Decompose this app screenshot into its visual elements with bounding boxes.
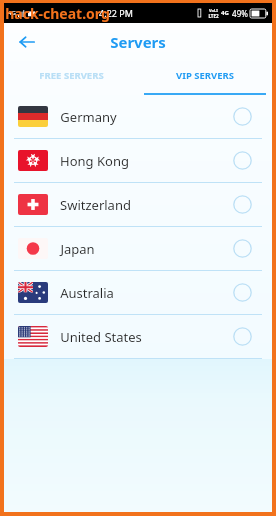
staticText: United States [60,328,142,346]
button[interactable]: Australia [4,271,272,314]
button[interactable]: FREE SERVERS [4,61,138,95]
staticText: 4G [8,9,16,17]
staticText: Hong Kong [60,152,129,170]
staticText: Japan [60,240,95,258]
button[interactable]: Back [12,27,42,57]
staticText: 4G [221,9,229,17]
staticText: Germany [60,108,117,126]
button[interactable]: Hong Kong [4,139,272,182]
staticText: LTE2 [208,13,219,19]
staticText: 49% [232,8,248,19]
staticText: 4:22 PM [99,7,133,19]
button[interactable]: United States [4,315,272,358]
staticText: VoLI [209,8,218,13]
staticText: FREE SERVERS [39,69,104,82]
staticText: VIP SERVERS [176,69,234,82]
button[interactable]: VIP SERVERS [138,61,272,95]
staticText: Servers [110,32,166,52]
button[interactable]: Japan [4,227,272,270]
button[interactable]: Switzerland [4,183,272,226]
button[interactable]: Germany [4,95,272,138]
staticText: Australia [60,284,114,302]
staticText: Switzerland [60,196,131,214]
staticText: hack-cheat.org [5,4,110,23]
